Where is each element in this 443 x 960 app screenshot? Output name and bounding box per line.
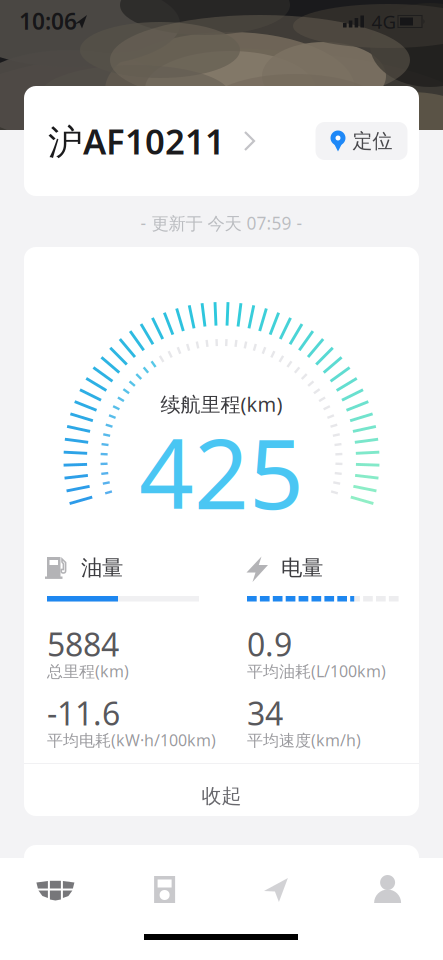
staticText: 5884 (47, 623, 119, 665)
staticText: 10:06 (19, 6, 77, 36)
staticText: - 更新于 今天 07:59 - (140, 211, 302, 234)
staticText: 0.9 (247, 623, 292, 665)
staticText: 平均电耗(kW·h/100km) (47, 729, 216, 751)
button[interactable]: 车辆 (33, 875, 77, 905)
staticText: 定位 (352, 129, 392, 153)
staticText: 续航里程(km) (160, 391, 282, 417)
staticText: 总里程(km) (47, 660, 129, 682)
staticText: 425 (139, 408, 304, 536)
staticText: 4G (371, 9, 396, 34)
button[interactable]: 车辆 沪AF10211 (24, 86, 419, 196)
staticText: 平均速度(km/h) (247, 729, 361, 751)
staticText: 油量 (81, 555, 123, 581)
button[interactable]: 定位 (315, 122, 407, 160)
staticText: 电量 (281, 555, 323, 581)
button[interactable]: 位置 (262, 875, 292, 905)
staticText: 沪AF10211 (48, 118, 225, 164)
staticText: 收起 (201, 784, 241, 808)
button[interactable]: 充电 (153, 876, 179, 904)
button[interactable]: 收起 (24, 774, 419, 818)
button[interactable]: 我的 (373, 875, 403, 905)
staticText: -11.6 (47, 692, 120, 734)
staticText: 平均油耗(L/100km) (247, 660, 386, 682)
staticText: 34 (247, 692, 283, 734)
